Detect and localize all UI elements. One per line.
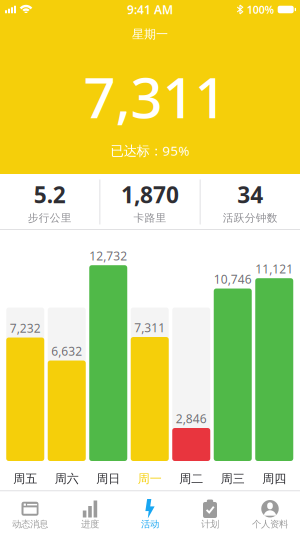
staticText: 星期一 — [132, 27, 168, 42]
staticText: 进度 — [81, 518, 99, 530]
staticText: 周日 — [96, 471, 120, 486]
staticText: 100% — [247, 2, 274, 17]
button[interactable]: 个人资料 — [240, 491, 300, 533]
staticText: 7,311 — [83, 59, 226, 134]
staticText: 周一 — [138, 471, 162, 486]
staticText: 周四 — [262, 471, 286, 486]
staticText: 34 — [237, 179, 263, 209]
staticText: 5.2 — [34, 179, 66, 209]
staticText: 计划 — [201, 518, 219, 530]
staticText: 周六 — [55, 471, 79, 486]
staticText: 步行公里 — [28, 211, 72, 225]
staticText: 12,732 — [89, 248, 127, 264]
staticText: 周三 — [221, 471, 245, 486]
staticText: 活动 — [141, 518, 159, 530]
staticText: 个人资料 — [252, 518, 288, 530]
staticText: 7,232 — [10, 320, 41, 336]
staticText: 9:41 AM — [127, 1, 173, 17]
staticText: 10,746 — [214, 271, 252, 287]
staticText: 周二 — [179, 471, 203, 486]
staticText: 活跃分钟数 — [223, 211, 278, 225]
button[interactable]: 计划 — [180, 491, 240, 533]
button[interactable]: 活动 — [120, 491, 180, 533]
staticText: 6,632 — [51, 343, 82, 359]
staticText: 动态消息 — [12, 518, 48, 530]
staticText: 2,846 — [176, 411, 207, 426]
button[interactable]: 进度 — [60, 491, 120, 533]
staticText: 1,870 — [121, 179, 179, 209]
staticText: 已达标：95% — [110, 142, 189, 159]
staticText: 11,121 — [255, 261, 293, 277]
button[interactable]: 动态消息 — [0, 491, 60, 533]
staticText: 7,311 — [134, 320, 165, 335]
staticText: 周五 — [13, 471, 37, 486]
staticText: 卡路里 — [133, 211, 166, 225]
